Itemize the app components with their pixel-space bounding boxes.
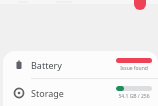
staticText: Issue found <box>120 65 148 72</box>
staticText: Battery <box>31 59 62 71</box>
staticText: 54.1 GB / 256 GB <box>116 93 152 100</box>
other: Storage <box>13 87 25 99</box>
button[interactable]: Storage <box>3 79 158 106</box>
staticText: Storage <box>31 87 64 99</box>
button[interactable]: Battery <box>3 51 158 78</box>
other: Battery <box>13 59 25 71</box>
